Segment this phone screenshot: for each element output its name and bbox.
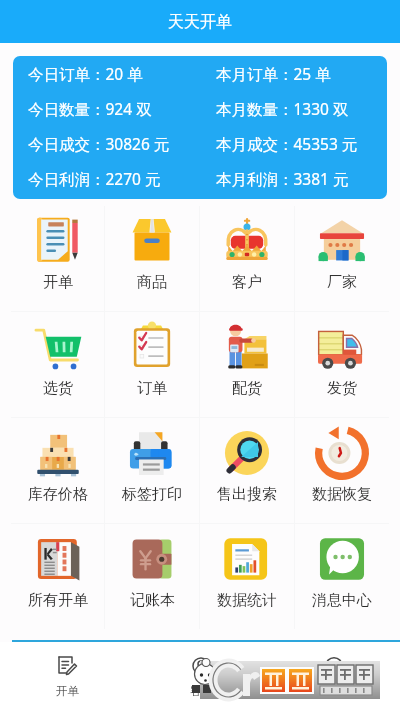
button[interactable]: 发货	[295, 312, 389, 417]
button[interactable]: 设置	[267, 642, 400, 710]
staticText: 开单	[43, 273, 73, 292]
staticText: 本月数量：1330 双	[216, 98, 349, 119]
staticText: 数据恢复	[312, 485, 372, 504]
staticText: 今日数量：924 双	[28, 98, 152, 119]
staticText: 客户	[232, 273, 262, 292]
button[interactable]: 订单	[105, 312, 199, 417]
button[interactable]: 开单	[11, 206, 104, 311]
staticText: 发货	[327, 379, 357, 398]
staticText: 售出搜索	[217, 485, 277, 504]
button[interactable]: 记账本	[105, 524, 199, 629]
button[interactable]: 所有开单	[11, 524, 104, 629]
staticText: 今日订单：20 单	[28, 63, 143, 84]
staticText: 消息中心	[312, 591, 372, 610]
staticText: 标签打印	[122, 485, 182, 504]
staticText: 本月成交：45353 元	[216, 133, 358, 154]
staticText: 客服	[190, 684, 213, 698]
staticText: 库存价格	[28, 485, 88, 504]
staticText: 商品	[137, 273, 167, 292]
button[interactable]: 今日订单：20 单	[13, 56, 387, 199]
button[interactable]: 厂家	[295, 206, 389, 311]
staticText: 记账本	[130, 591, 175, 610]
staticText: 设置	[323, 684, 346, 698]
staticText: 今日利润：2270 元	[28, 168, 161, 189]
button[interactable]: 消息中心	[295, 524, 389, 629]
button[interactable]: 配货	[200, 312, 294, 417]
staticText: 本月订单：25 单	[216, 63, 331, 84]
button[interactable]: 数据统计	[200, 524, 294, 629]
button[interactable]: 商品	[105, 206, 199, 311]
button[interactable]: 客服	[134, 642, 267, 710]
button[interactable]: 数据恢复	[295, 418, 389, 523]
staticText: 订单	[137, 379, 167, 398]
staticText: 今日成交：30826 元	[28, 133, 170, 154]
staticText: 厂家	[327, 273, 357, 292]
staticText: 开单	[56, 684, 79, 698]
button[interactable]: 客户	[200, 206, 294, 311]
button[interactable]: 开单	[0, 642, 134, 710]
button[interactable]: 库存价格	[11, 418, 104, 523]
staticText: 配货	[232, 379, 262, 398]
button[interactable]: 选货	[11, 312, 104, 417]
staticText: 天天开单	[168, 12, 232, 32]
staticText: 数据统计	[217, 591, 277, 610]
button[interactable]: 标签打印	[105, 418, 199, 523]
staticText: 选货	[43, 379, 73, 398]
staticText: 所有开单	[28, 591, 88, 610]
staticText: 本月利润：3381 元	[216, 168, 349, 189]
button[interactable]: 售出搜索	[200, 418, 294, 523]
